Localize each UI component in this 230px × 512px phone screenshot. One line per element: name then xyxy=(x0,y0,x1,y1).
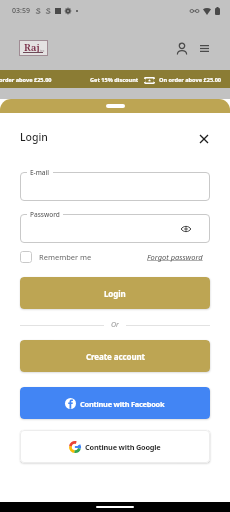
staticText: Get 15% discount xyxy=(90,76,139,84)
staticText: order above £25.00 xyxy=(0,76,52,84)
button[interactable]: Create account xyxy=(20,340,210,372)
staticText: Login xyxy=(20,130,48,144)
staticText: Forgot password xyxy=(147,252,203,262)
button[interactable]: Forgot password xyxy=(147,250,203,264)
staticText: Password xyxy=(30,210,60,219)
staticText: 03:59 xyxy=(12,6,30,16)
button[interactable]: Continue with Facebook xyxy=(20,387,210,419)
button[interactable]: Menu xyxy=(193,37,215,59)
button[interactable] xyxy=(20,172,210,201)
button[interactable]: Login xyxy=(20,277,210,309)
staticText: tex xyxy=(40,49,45,53)
staticText: On order above £25.00 xyxy=(159,76,222,84)
button[interactable]: Show password xyxy=(179,222,193,236)
button[interactable] xyxy=(20,214,210,243)
staticText: Remember me xyxy=(39,252,92,262)
button[interactable]: Continue with Google xyxy=(20,430,210,463)
staticText: Continue with Facebook xyxy=(80,399,165,409)
staticText: Continue with Google xyxy=(85,442,161,452)
staticText: Raj xyxy=(24,41,40,54)
staticText: Login xyxy=(104,288,126,299)
staticText: Create account xyxy=(86,351,145,362)
button[interactable]: Account xyxy=(171,37,193,59)
button[interactable]: Close xyxy=(195,130,213,148)
button[interactable]: Remember me xyxy=(20,250,92,264)
staticText: Or xyxy=(111,320,119,330)
staticText: E-mail xyxy=(30,168,50,177)
